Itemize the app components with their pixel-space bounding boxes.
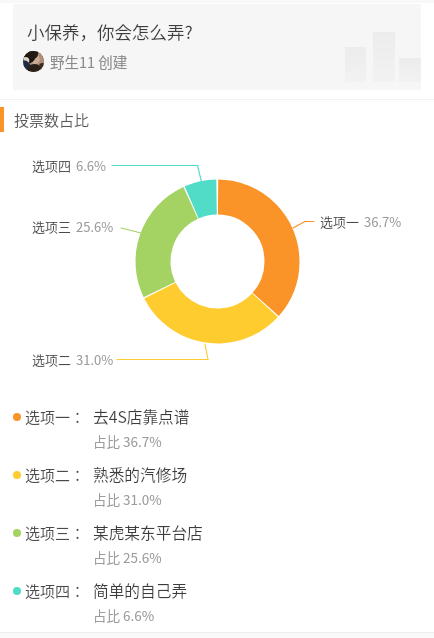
staticText: 去4S店靠点谱 [93, 405, 190, 428]
staticText: 36.7% [364, 212, 402, 231]
staticText: 选项二 [32, 350, 72, 369]
button[interactable]: 小保养，你会怎么弄? [13, 4, 421, 90]
button[interactable]: 选项二： [0, 461, 434, 513]
staticText: 投票数占比 [14, 109, 90, 131]
staticText: 选项一： [25, 406, 86, 428]
staticText: 野生11 创建 [50, 51, 128, 72]
other: 作者头像 [23, 51, 44, 72]
staticText: 选项四： [25, 580, 86, 602]
staticText: 25.6% [76, 217, 114, 236]
staticText: 选项三： [25, 522, 86, 544]
staticText: 占比 25.6% [93, 547, 162, 567]
staticText: 占比 6.6% [93, 605, 155, 625]
staticText: 某虎某东平台店 [93, 521, 203, 544]
staticText: 选项四 [32, 156, 72, 175]
staticText: 简单的自己弄 [93, 579, 188, 602]
button[interactable]: 选项三： [0, 519, 434, 571]
staticText: 6.6% [76, 156, 107, 175]
staticText: 熟悉的汽修场 [93, 463, 188, 486]
staticText: 选项三 [32, 217, 72, 236]
button[interactable]: 选项四： [0, 577, 434, 629]
staticText: 选项二： [25, 464, 86, 486]
staticText: 选项一 [320, 212, 360, 231]
staticText: 占比 31.0% [93, 489, 162, 509]
button[interactable]: 选项一： [0, 403, 434, 455]
staticText: 小保养，你会怎么弄? [27, 19, 193, 44]
staticText: 占比 36.7% [93, 431, 162, 451]
staticText: 31.0% [76, 350, 114, 369]
